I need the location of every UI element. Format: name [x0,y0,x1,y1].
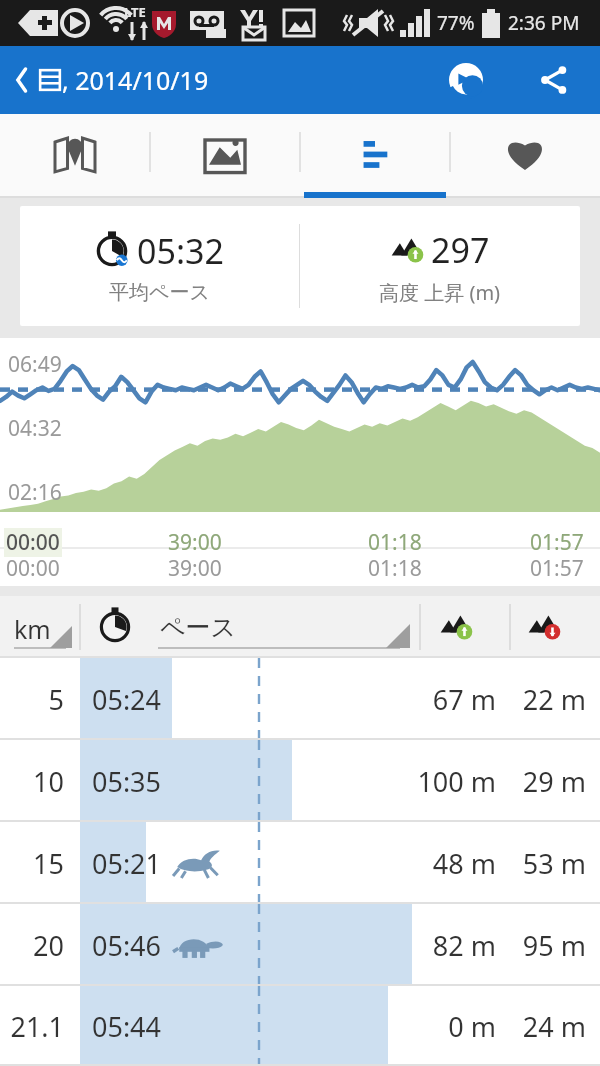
staticText: 24 m [498,1008,586,1045]
staticText: 高度 上昇 (m) [379,279,501,306]
staticText: 22 m [498,681,586,718]
staticText: 53 m [498,845,586,882]
staticText: km [14,612,51,646]
staticText: 100 m [400,763,496,800]
staticText: 平均ペース [109,280,210,305]
button[interactable]: Map [0,114,150,198]
button[interactable]: 06:49 [0,338,600,586]
staticText: 04:32 [8,414,62,443]
staticText: 01:57 [530,528,584,557]
staticText: 15 [0,845,64,882]
button[interactable]: Photos [150,114,300,198]
button[interactable]: , 2014/10/19 [10,57,213,103]
staticText: 02:16 [8,478,62,507]
staticText: 39:00 [168,528,222,557]
button[interactable]: Heart rate [450,114,600,198]
button[interactable]: 15 [0,822,600,904]
button[interactable]: Share [530,56,578,104]
button[interactable]: 10 [0,740,600,822]
staticText: 39:00 [168,554,222,583]
button[interactable]: 05:32 [20,206,580,326]
staticText: , 2014/10/19 [62,63,209,97]
staticText: 05:35 [92,763,162,800]
staticText: 01:57 [530,554,584,583]
staticText: 297 [431,227,490,273]
staticText: 67 m [400,681,496,718]
staticText: 20 [0,927,64,964]
button[interactable]: 5 [0,658,600,740]
staticText: 77% [437,10,475,36]
staticText: ペース [160,612,237,643]
staticText: 01:18 [368,528,422,557]
button[interactable]: Runkeeper activity [442,56,490,104]
staticText: 5 [0,681,64,718]
button[interactable]: Charts [300,114,450,198]
staticText: 00:00 [6,528,60,557]
staticText: 95 m [498,927,586,964]
staticText: 21.1 [0,1008,64,1045]
button[interactable]: 20 [0,904,600,986]
staticText: 01:18 [368,554,422,583]
staticText: LTE [124,3,146,21]
staticText: 10 [0,763,64,800]
staticText: 0 m [400,1008,496,1045]
staticText: 29 m [498,763,586,800]
staticText: 05:32 [137,228,224,274]
staticText: 82 m [400,927,496,964]
staticText: 2:36 PM [508,10,580,36]
staticText: 06:49 [8,350,62,379]
staticText: 05:21 [92,845,162,882]
staticText: 05:46 [92,927,162,964]
staticText: 05:24 [92,681,162,718]
staticText: 00:00 [6,554,60,583]
button[interactable]: 21.1 [0,986,600,1066]
staticText: 05:44 [92,1008,162,1045]
staticText: 48 m [400,845,496,882]
